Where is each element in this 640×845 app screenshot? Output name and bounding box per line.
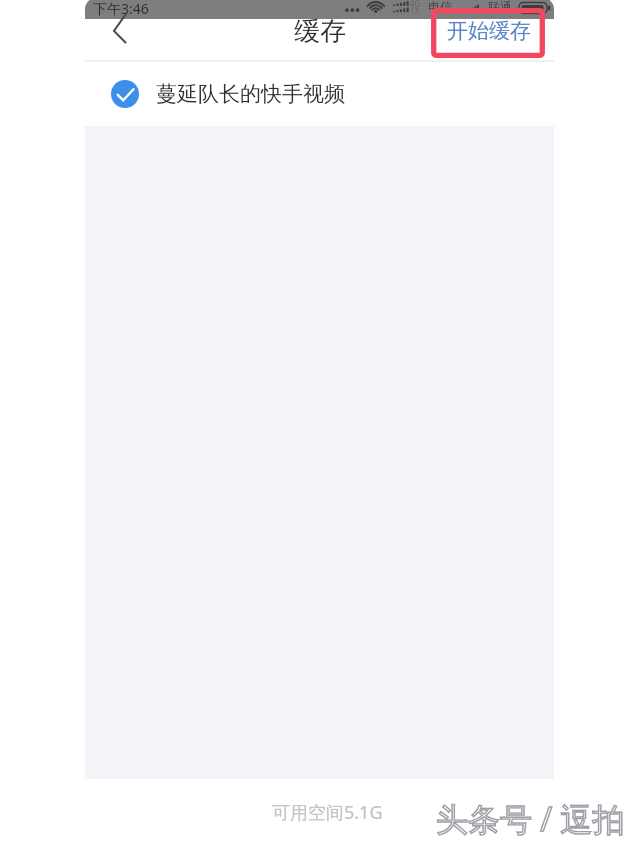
staticText: 联通 bbox=[488, 0, 512, 14]
staticText: 4G bbox=[410, 0, 421, 9]
staticText: 下午3:46 bbox=[93, 0, 149, 18]
button[interactable]: 开始缓存 bbox=[441, 11, 537, 51]
staticText: 缓存 bbox=[0, 15, 640, 48]
button[interactable]: 蔓延队长的快手视频 bbox=[85, 63, 554, 125]
staticText: 1X bbox=[410, 5, 420, 16]
staticText: 开始缓存 bbox=[447, 18, 531, 44]
staticText: 蔓延队长的快手视频 bbox=[156, 81, 345, 107]
staticText: 可用空间5.1G bbox=[272, 800, 383, 825]
staticText: 头条号 / 逗拍 bbox=[436, 797, 625, 841]
staticText: 电信 bbox=[428, 0, 452, 14]
button[interactable]: Back bbox=[98, 10, 142, 54]
